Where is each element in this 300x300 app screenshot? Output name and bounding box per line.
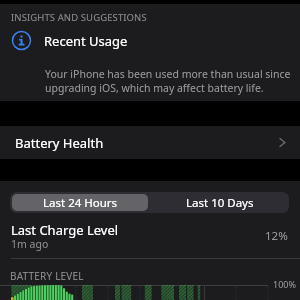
staticText: 1m ago xyxy=(11,237,49,251)
button[interactable]: Last 10 Days xyxy=(150,192,289,213)
staticText: INSIGHTS AND SUGGESTIONS xyxy=(11,11,147,24)
staticText: Recent Usage xyxy=(44,32,128,50)
staticText: BATTERY LEVEL xyxy=(10,269,84,283)
staticText: 100% xyxy=(273,278,296,290)
button[interactable]: Battery Health xyxy=(0,126,300,159)
staticText: Battery Health xyxy=(15,134,104,152)
staticText: Last Charge Level xyxy=(11,221,119,239)
button[interactable]: Information xyxy=(0,28,300,53)
button[interactable]: Last 24 Hours xyxy=(12,194,148,211)
staticText: Last 10 Days xyxy=(186,195,254,211)
staticText: Last 24 Hours xyxy=(43,195,118,211)
staticText: Your iPhone has been used more than usua… xyxy=(45,67,293,95)
staticText: 12% xyxy=(265,228,288,244)
other: Information xyxy=(12,31,31,50)
